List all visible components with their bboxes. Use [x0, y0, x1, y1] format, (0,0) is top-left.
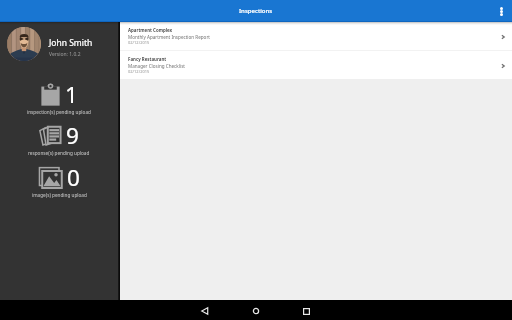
- staticText: 9: [66, 120, 79, 151]
- staticText: Version: 1.0.2: [49, 51, 81, 58]
- button[interactable]: 0: [0, 162, 118, 199]
- button[interactable]: 1: [0, 79, 118, 116]
- button[interactable]: Home: [226, 301, 285, 320]
- staticText: 02/12/2015: [128, 40, 150, 45]
- staticText: John Smith: [49, 37, 93, 49]
- other: Open: [501, 64, 505, 68]
- button[interactable]: Fancy Restaurant: [120, 51, 512, 79]
- other: Open: [501, 35, 505, 39]
- button[interactable]: More options: [490, 0, 512, 22]
- staticText: 02/12/2015: [128, 69, 150, 74]
- staticText: Fancy Restaurant: [128, 56, 167, 62]
- button[interactable]: Back: [183, 301, 226, 320]
- button[interactable]: John Smith: [0, 22, 118, 88]
- button[interactable]: Recent apps: [285, 301, 328, 320]
- staticText: image(s) pending upload: [32, 192, 87, 198]
- staticText: 0: [67, 162, 80, 193]
- staticText: 1: [65, 79, 78, 110]
- staticText: Monthly Apartment Inspection Report: [128, 34, 210, 40]
- staticText: inspection(s) pending upload: [27, 109, 91, 115]
- staticText: Apartment Complex: [128, 27, 173, 33]
- staticText: response(s) pending upload: [28, 150, 90, 156]
- button[interactable]: 9: [0, 120, 118, 157]
- staticText: Manager Closing Checklist: [128, 63, 186, 69]
- staticText: Inspections: [239, 7, 273, 15]
- button[interactable]: Apartment Complex: [120, 22, 512, 50]
